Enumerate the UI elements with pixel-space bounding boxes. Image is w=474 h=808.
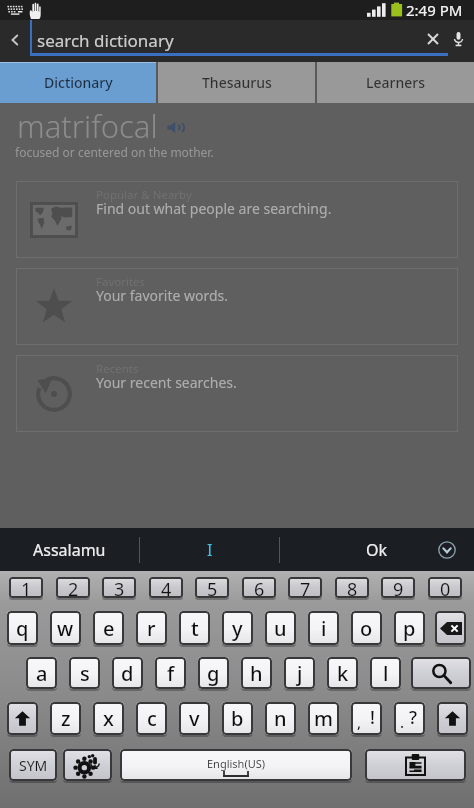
staticText: 4 bbox=[161, 577, 172, 598]
button[interactable]: b bbox=[222, 702, 253, 735]
staticText: a bbox=[36, 660, 48, 687]
button[interactable]: 6 bbox=[242, 577, 276, 598]
staticText: Your recent searches. bbox=[96, 373, 237, 392]
button[interactable]: e bbox=[93, 611, 124, 645]
button[interactable]: q bbox=[7, 611, 38, 645]
staticText: 2:49 PM bbox=[406, 0, 463, 20]
staticText: . bbox=[400, 712, 405, 732]
staticText: Learners bbox=[366, 73, 425, 92]
button[interactable]: c bbox=[136, 702, 167, 735]
button[interactable] bbox=[7, 702, 38, 735]
staticText: Popular & Nearby bbox=[96, 187, 192, 203]
staticText: v bbox=[189, 705, 200, 732]
button[interactable]: Pronounce bbox=[163, 114, 189, 140]
button[interactable]: i bbox=[308, 611, 339, 645]
staticText: matrifocal bbox=[17, 105, 158, 147]
staticText: e bbox=[103, 615, 115, 642]
button[interactable]: g bbox=[198, 657, 229, 689]
staticText: Thesaurus bbox=[202, 73, 272, 92]
button[interactable] bbox=[435, 611, 466, 645]
button[interactable]: Expand suggestions bbox=[436, 539, 458, 561]
button[interactable]: 9 bbox=[381, 577, 415, 598]
staticText: g bbox=[207, 660, 220, 687]
staticText: I bbox=[207, 539, 213, 561]
button[interactable] bbox=[411, 657, 471, 689]
button[interactable] bbox=[63, 749, 112, 781]
staticText: 5 bbox=[207, 577, 218, 598]
button[interactable]: Thesaurus bbox=[158, 62, 315, 103]
button[interactable]: u bbox=[265, 611, 296, 645]
button[interactable]: r bbox=[136, 611, 167, 645]
button[interactable]: z bbox=[50, 702, 81, 735]
button[interactable]: n bbox=[265, 702, 296, 735]
button[interactable] bbox=[437, 702, 468, 735]
button[interactable]: s bbox=[69, 657, 100, 689]
button[interactable]: 0 bbox=[428, 577, 462, 598]
staticText: ! bbox=[370, 705, 375, 730]
button[interactable]: a bbox=[26, 657, 57, 689]
button[interactable]: I bbox=[140, 528, 279, 571]
button[interactable]: Clear bbox=[419, 25, 446, 52]
button[interactable]: o bbox=[351, 611, 382, 645]
button[interactable]: Learners bbox=[317, 62, 474, 103]
button[interactable]: m bbox=[308, 702, 339, 735]
button[interactable]: Dictionary bbox=[0, 62, 156, 103]
staticText: Assalamu bbox=[33, 539, 106, 561]
staticText: 3 bbox=[114, 577, 125, 598]
staticText: z bbox=[61, 705, 71, 732]
button[interactable]: SYM bbox=[9, 749, 57, 781]
button[interactable]: h bbox=[241, 657, 272, 689]
button[interactable]: 2 bbox=[56, 577, 90, 598]
button[interactable]: v bbox=[179, 702, 210, 735]
staticText: k bbox=[337, 660, 349, 687]
button[interactable]: p bbox=[394, 611, 425, 645]
button[interactable]: f bbox=[155, 657, 186, 689]
button[interactable]: Recents bbox=[16, 355, 458, 432]
button[interactable]: Back bbox=[0, 26, 30, 54]
button[interactable] bbox=[365, 749, 466, 781]
button[interactable]: 7 bbox=[288, 577, 322, 598]
staticText: i bbox=[321, 615, 327, 642]
button[interactable]: w bbox=[50, 611, 81, 645]
button[interactable]: j bbox=[284, 657, 315, 689]
button[interactable]: k bbox=[327, 657, 358, 689]
button[interactable]: 8 bbox=[335, 577, 369, 598]
staticText: m bbox=[314, 705, 333, 732]
button[interactable]: 4 bbox=[149, 577, 183, 598]
staticText: f bbox=[167, 660, 175, 687]
button[interactable]: d bbox=[112, 657, 143, 689]
staticText: o bbox=[360, 615, 373, 642]
staticText: focused or centered on the mother. bbox=[15, 144, 214, 160]
staticText: h bbox=[250, 660, 263, 687]
button[interactable]: x bbox=[93, 702, 124, 735]
staticText: 6 bbox=[254, 577, 265, 598]
staticText: b bbox=[231, 705, 244, 732]
staticText: , bbox=[357, 712, 362, 732]
button[interactable]: English(US) bbox=[120, 749, 352, 781]
staticText: Recents bbox=[96, 361, 139, 377]
button[interactable]: l bbox=[370, 657, 401, 689]
button[interactable]: Popular & Nearby bbox=[16, 181, 458, 258]
staticText: 2 bbox=[68, 577, 79, 598]
button[interactable]: 1 bbox=[9, 577, 43, 598]
staticText: w bbox=[57, 615, 74, 642]
staticText: 1 bbox=[21, 577, 32, 598]
button[interactable]: 3 bbox=[102, 577, 136, 598]
button[interactable]: , bbox=[351, 702, 382, 735]
staticText: Ok bbox=[366, 539, 388, 561]
button[interactable]: Assalamu bbox=[0, 528, 139, 571]
staticText: n bbox=[274, 705, 287, 732]
staticText: 7 bbox=[300, 577, 311, 598]
staticText: c bbox=[147, 705, 157, 732]
staticText: search dictionary bbox=[37, 29, 174, 52]
button[interactable]: Voice search bbox=[446, 26, 471, 51]
staticText: y bbox=[232, 615, 243, 642]
staticText: English(US) bbox=[207, 756, 266, 771]
button[interactable]: 5 bbox=[195, 577, 229, 598]
button[interactable]: y bbox=[222, 611, 253, 645]
button[interactable]: . bbox=[394, 702, 425, 735]
staticText: SYM bbox=[19, 756, 48, 775]
button[interactable]: Favorites bbox=[16, 268, 458, 345]
button[interactable]: t bbox=[179, 611, 210, 645]
button[interactable]: Ok bbox=[280, 528, 474, 571]
